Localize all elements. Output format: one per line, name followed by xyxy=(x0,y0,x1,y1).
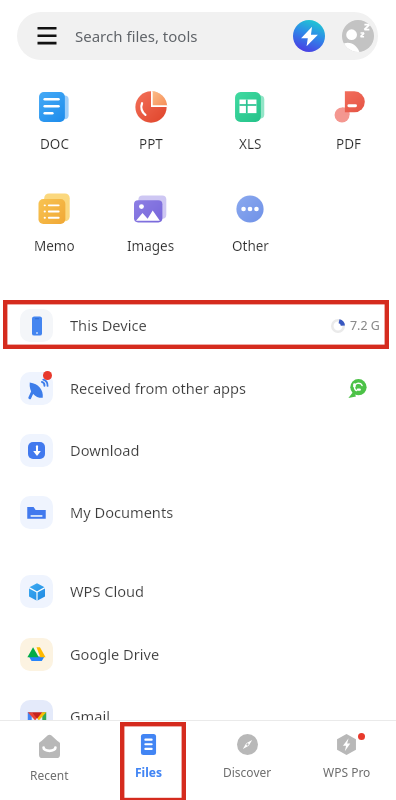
button[interactable]: Gmail xyxy=(0,685,396,747)
button[interactable]: PDF xyxy=(313,87,385,143)
button[interactable]: Search files, tools xyxy=(17,12,378,60)
staticText: Images xyxy=(127,237,175,255)
staticText: My Documents xyxy=(70,502,174,522)
staticText: XLS xyxy=(239,135,262,153)
staticText: PPT xyxy=(139,135,163,153)
button[interactable]: Recent xyxy=(0,721,99,800)
button[interactable]: PPT xyxy=(115,87,187,143)
button[interactable]: Google Drive xyxy=(0,623,396,685)
button[interactable]: AI assistant xyxy=(293,20,325,52)
button[interactable]: Account xyxy=(342,20,374,52)
staticText: Download xyxy=(70,440,140,460)
staticText: Search files, tools xyxy=(75,26,198,46)
staticText: Files xyxy=(135,764,162,780)
staticText: Google Drive xyxy=(70,644,160,664)
staticText: Gmail xyxy=(70,706,110,726)
button[interactable]: WPS Pro xyxy=(297,721,396,800)
staticText: PDF xyxy=(336,135,362,153)
staticText: Discover xyxy=(223,764,272,780)
staticText: Received from other apps xyxy=(70,378,247,398)
button[interactable]: Memo xyxy=(18,189,90,245)
staticText: Memo xyxy=(34,237,75,255)
button[interactable]: DOC xyxy=(18,87,90,143)
button[interactable]: My Documents xyxy=(0,481,396,543)
staticText: WPS Cloud xyxy=(70,581,145,601)
staticText: Recent xyxy=(30,767,69,783)
button[interactable]: XLS xyxy=(214,87,286,143)
button[interactable]: Download xyxy=(0,419,396,481)
button[interactable]: This Device xyxy=(0,294,396,356)
staticText: 7.2 G xyxy=(350,317,380,334)
button[interactable]: Files xyxy=(99,721,198,800)
button[interactable]: WPS Cloud xyxy=(0,560,396,622)
staticText: WPS Pro xyxy=(323,764,371,780)
button[interactable]: Discover xyxy=(198,721,297,800)
button[interactable]: Images xyxy=(115,189,187,245)
button[interactable]: Other xyxy=(214,189,286,245)
staticText: Other xyxy=(232,237,269,255)
button[interactable]: Received from other apps xyxy=(0,357,396,419)
staticText: DOC xyxy=(40,135,69,153)
staticText: This Device xyxy=(70,315,147,335)
